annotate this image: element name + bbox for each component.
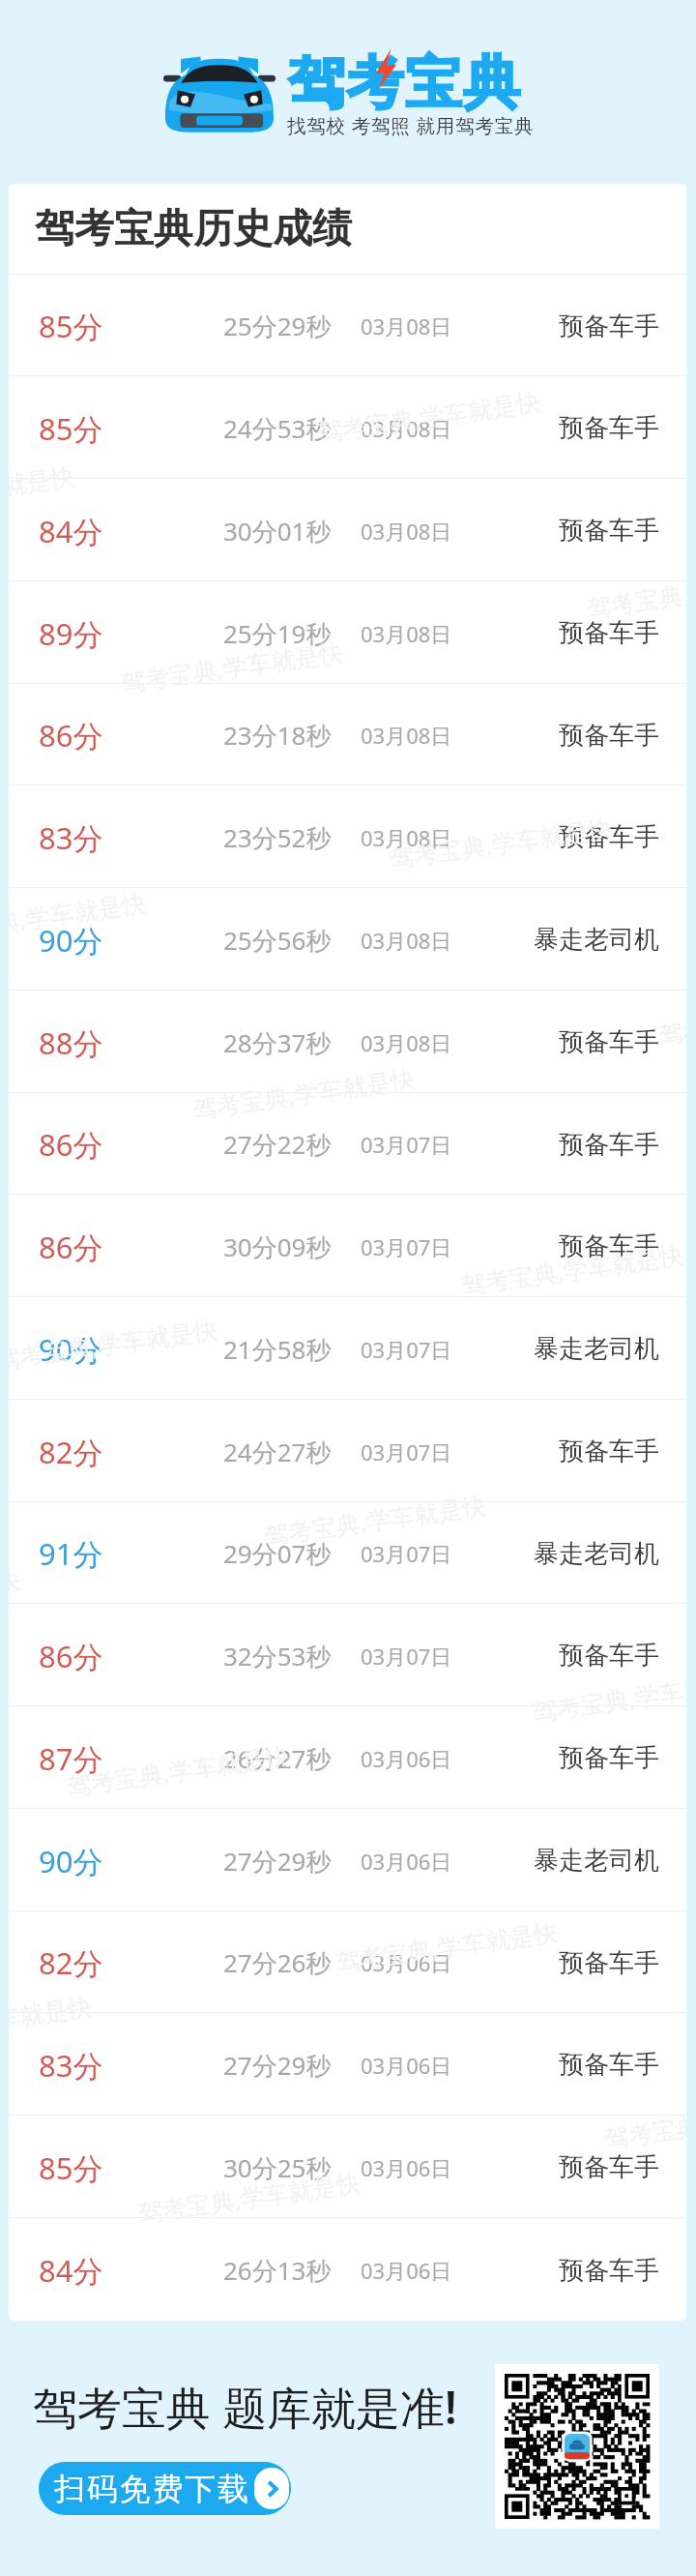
staticText: 暴走老司机 xyxy=(534,1845,659,1877)
staticText: 驾考宝典,学车就是快 xyxy=(585,560,686,624)
staticText: 驾考宝典,学车就是快 xyxy=(9,1989,94,2053)
staticText: 找驾校 考驾照 就用驾考宝典 xyxy=(287,112,535,138)
staticText: 87分 xyxy=(39,1738,103,1779)
staticText: 27分22秒 xyxy=(223,1127,332,1162)
button[interactable]: 85分 xyxy=(9,376,686,478)
staticText: 85分 xyxy=(39,2147,103,2188)
staticText: 驾考宝典,学车就是快 xyxy=(459,1237,686,1301)
staticText: 预备车手 xyxy=(559,2151,659,2183)
staticText: 预备车手 xyxy=(559,1640,659,1672)
staticText: 86分 xyxy=(39,1227,103,1267)
button[interactable]: QR code — scan to download xyxy=(495,2364,659,2529)
staticText: 26分13秒 xyxy=(223,2253,332,2288)
staticText: 预备车手 xyxy=(559,515,659,547)
staticText: 暴走老司机 xyxy=(534,924,659,956)
button[interactable]: 90分 xyxy=(9,1809,686,1910)
staticText: 预备车手 xyxy=(559,720,659,752)
staticText: 90分 xyxy=(39,1841,103,1881)
button[interactable]: 85分 xyxy=(9,275,686,375)
staticText: 03月07日 xyxy=(361,1539,452,1568)
staticText: 预备车手 xyxy=(559,617,659,649)
button[interactable]: 驾考宝典 app logo xyxy=(159,55,280,133)
staticText: 预备车手 xyxy=(559,2049,659,2081)
staticText: 82分 xyxy=(39,1432,103,1472)
staticText: 30分01秒 xyxy=(223,514,332,548)
staticText: 驾考宝典,学车就是快 xyxy=(656,987,686,1051)
button[interactable]: 90分 xyxy=(9,888,686,990)
button[interactable]: 86分 xyxy=(9,1604,686,1705)
button[interactable]: 90分 xyxy=(9,1297,686,1399)
staticText: 86分 xyxy=(39,1636,103,1676)
staticText: 驾考宝典,学车就是快 xyxy=(190,1061,417,1125)
staticText: 03月06日 xyxy=(361,1744,452,1773)
button[interactable]: 88分 xyxy=(9,991,686,1092)
staticText: 26分27秒 xyxy=(223,1741,332,1776)
staticText: 90分 xyxy=(39,920,103,961)
staticText: 24分27秒 xyxy=(223,1435,332,1469)
button[interactable]: 91分 xyxy=(9,1502,686,1603)
staticText: 驾考宝典 xyxy=(287,47,521,119)
staticText: 24分53秒 xyxy=(223,411,332,446)
staticText: 03月08日 xyxy=(361,311,452,341)
staticText: 预备车手 xyxy=(559,1947,659,1979)
staticText: 预备车手 xyxy=(559,1436,659,1467)
staticText: 驾考宝典,学车就是快 xyxy=(65,1738,291,1802)
staticText: 03月06日 xyxy=(361,2256,452,2285)
staticText: 03月08日 xyxy=(361,1028,452,1057)
staticText: 90分 xyxy=(39,1329,103,1370)
button[interactable]: 86分 xyxy=(9,1093,686,1194)
staticText: 84分 xyxy=(39,2250,103,2291)
staticText: 82分 xyxy=(39,1942,103,1983)
staticText: 预备车手 xyxy=(559,412,659,444)
staticText: 扫码免费下载 xyxy=(54,2470,250,2508)
staticText: 88分 xyxy=(39,1022,103,1063)
staticText: 03月08日 xyxy=(361,414,452,443)
staticText: 预备车手 xyxy=(559,2255,659,2287)
staticText: 驾考宝典,学车就是快 xyxy=(119,635,345,698)
button[interactable]: 86分 xyxy=(9,1195,686,1296)
button[interactable]: 84分 xyxy=(9,479,686,580)
staticText: 85分 xyxy=(39,306,103,346)
staticText: 驾考宝典,学车就是快 xyxy=(9,1562,22,1626)
button[interactable]: 83分 xyxy=(9,785,686,887)
staticText: 预备车手 xyxy=(559,1026,659,1058)
staticText: 03月07日 xyxy=(361,1232,452,1261)
staticText: 86分 xyxy=(39,715,103,755)
staticText: 03月06日 xyxy=(361,1948,452,1977)
button[interactable]: 83分 xyxy=(9,2013,686,2115)
button[interactable]: 82分 xyxy=(9,1400,686,1501)
staticText: 预备车手 xyxy=(559,1230,659,1262)
staticText: 29分07秒 xyxy=(223,1536,332,1571)
button[interactable]: 89分 xyxy=(9,581,686,683)
staticText: 驾考宝典,学车就是快 xyxy=(531,1664,686,1728)
staticText: 03月08日 xyxy=(361,721,452,750)
staticText: 03月06日 xyxy=(361,1847,452,1876)
staticText: 驾考宝典,学车就是快 xyxy=(262,1488,488,1552)
staticText: 驾考宝典,学车就是快 xyxy=(316,384,543,448)
button[interactable]: 82分 xyxy=(9,1911,686,2012)
staticText: 21分58秒 xyxy=(223,1332,332,1367)
staticText: 03月07日 xyxy=(361,1642,452,1671)
staticText: 驾考宝典,学车就是快 xyxy=(9,459,77,522)
staticText: 03月06日 xyxy=(361,2153,452,2182)
staticText: 30分09秒 xyxy=(223,1229,332,1264)
button[interactable]: 85分 xyxy=(9,2116,686,2217)
staticText: 03月07日 xyxy=(361,1437,452,1466)
staticText: 83分 xyxy=(39,2045,103,2086)
staticText: 预备车手 xyxy=(559,1742,659,1774)
staticText: 03月07日 xyxy=(361,1335,452,1364)
button[interactable]: 87分 xyxy=(9,1706,686,1808)
button[interactable]: 86分 xyxy=(9,684,686,785)
staticText: 03月07日 xyxy=(361,1130,452,1159)
button[interactable]: 84分 xyxy=(9,2218,686,2321)
staticText: 85分 xyxy=(39,408,103,449)
staticText: 30分25秒 xyxy=(223,2150,332,2185)
button[interactable]: 扫码免费下载 xyxy=(39,2462,291,2515)
staticText: 驾考宝典,学车就是快 xyxy=(602,2090,686,2154)
staticText: 驾考宝典,学车就是快 xyxy=(387,811,614,874)
staticText: 03月08日 xyxy=(361,823,452,852)
staticText: 89分 xyxy=(39,613,103,654)
staticText: 27分29秒 xyxy=(223,2048,332,2083)
staticText: 32分53秒 xyxy=(223,1639,332,1673)
staticText: 驾考宝典,学车就是快 xyxy=(136,2165,363,2229)
